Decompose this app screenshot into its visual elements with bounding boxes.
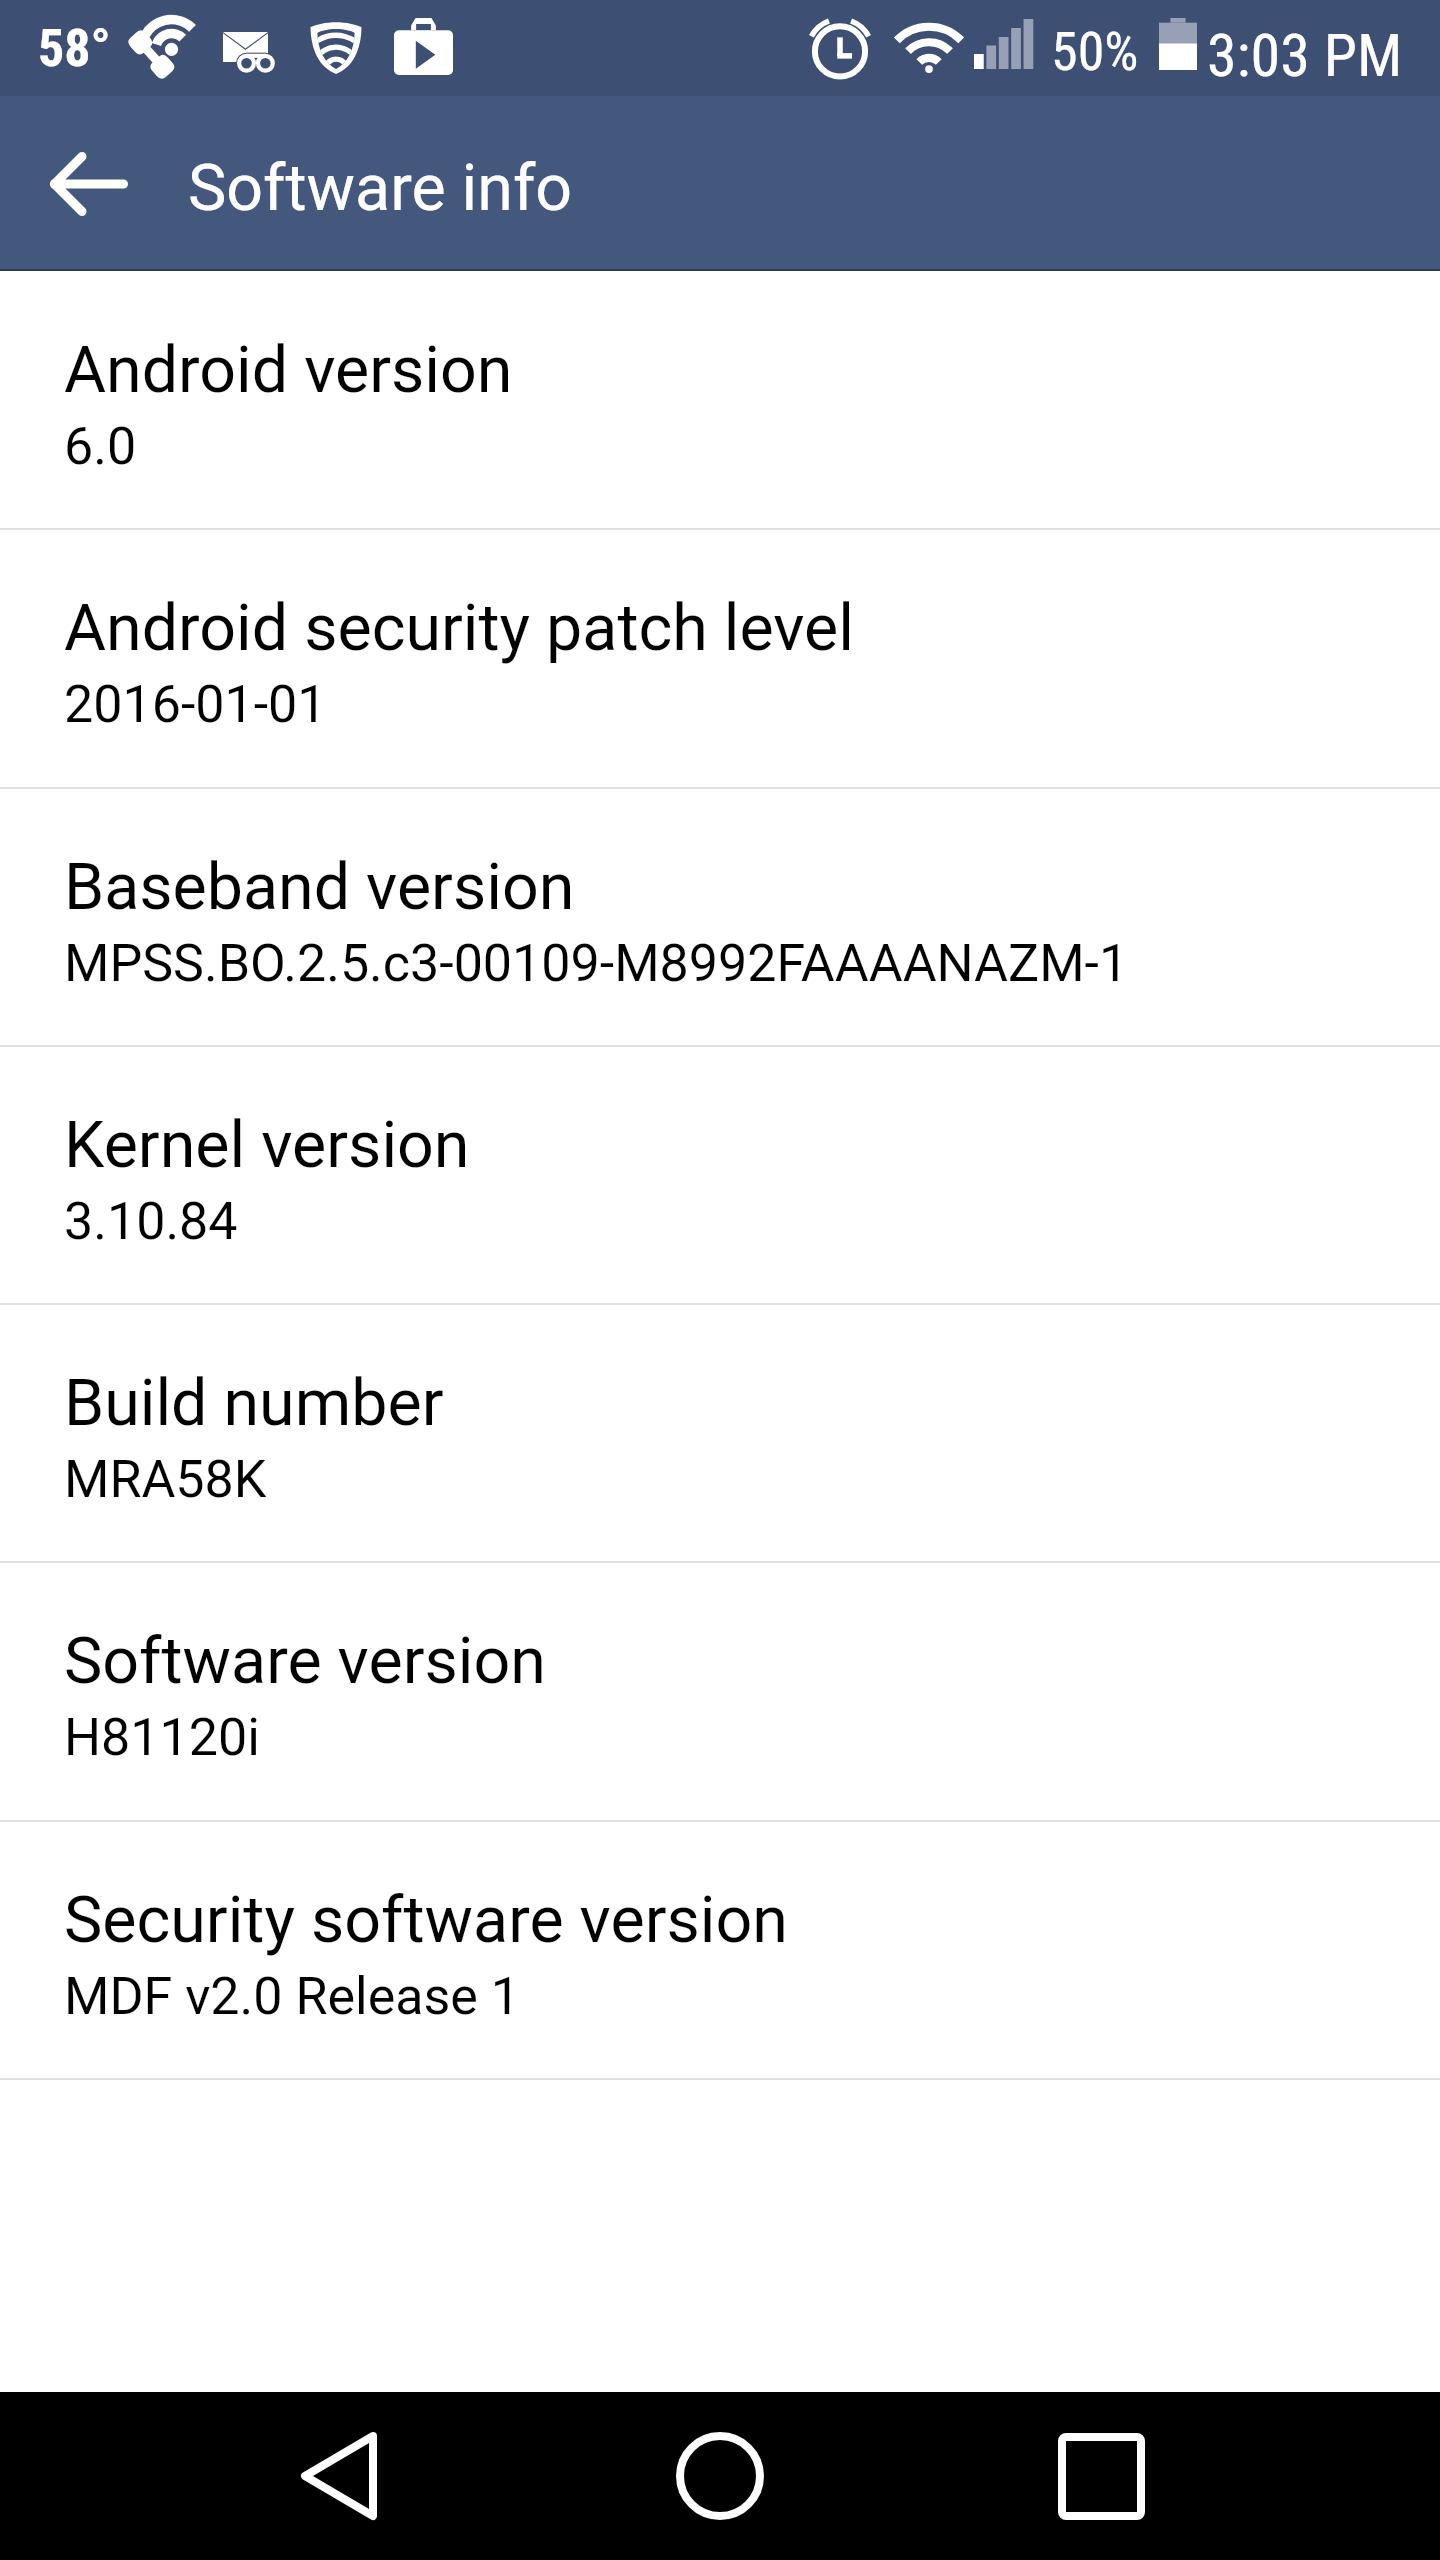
staticText: Software version bbox=[64, 1623, 546, 1699]
button[interactable]: Recent apps bbox=[1016, 2392, 1186, 2560]
button[interactable]: Software version bbox=[0, 1563, 1440, 1821]
button[interactable]: Build number bbox=[0, 1305, 1440, 1563]
button[interactable]: Android version bbox=[0, 272, 1440, 530]
staticText: H81120i bbox=[64, 1707, 260, 1768]
staticText: 3:03 PM bbox=[1207, 20, 1403, 90]
button[interactable]: Baseband version bbox=[0, 789, 1440, 1047]
staticText: 3.10.84 bbox=[64, 1191, 238, 1252]
staticText: MPSS.BO.2.5.c3-00109-M8992FAAAANAZM-1 bbox=[64, 933, 1129, 994]
staticText: 50% bbox=[1051, 20, 1139, 83]
staticText: MDF v2.0 Release 1 bbox=[64, 1966, 521, 2027]
button[interactable]: Back bbox=[254, 2392, 424, 2560]
button[interactable]: Android security patch level bbox=[0, 530, 1440, 788]
staticText: Software info bbox=[188, 150, 573, 226]
staticText: Baseband version bbox=[64, 849, 575, 925]
button[interactable]: Home bbox=[635, 2392, 805, 2560]
button[interactable]: Back bbox=[7, 96, 170, 271]
button[interactable]: Kernel version bbox=[0, 1047, 1440, 1305]
staticText: MRA58K bbox=[64, 1449, 267, 1510]
staticText: Build number bbox=[64, 1365, 444, 1441]
staticText: Android security patch level bbox=[64, 590, 854, 666]
staticText: Kernel version bbox=[64, 1107, 470, 1183]
button[interactable]: Security software version bbox=[0, 1822, 1440, 2080]
staticText: 6.0 bbox=[64, 416, 137, 477]
staticText: 2016-01-01 bbox=[64, 674, 327, 735]
staticText: 58° bbox=[38, 18, 111, 79]
staticText: Android version bbox=[64, 332, 513, 408]
staticText: Security software version bbox=[64, 1882, 788, 1958]
